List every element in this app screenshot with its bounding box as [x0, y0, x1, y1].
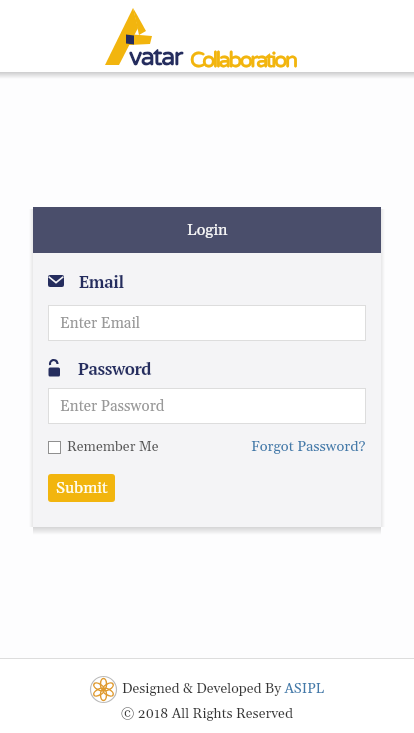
staticText: Email: [79, 270, 124, 292]
staticText: Enter Password: [60, 397, 165, 416]
staticText: Submit: [56, 478, 108, 498]
button[interactable]: Designed & Developed By ASIPL: [122, 680, 325, 698]
button[interactable]: Submit: [48, 474, 115, 502]
staticText: Collaboration: [190, 47, 296, 73]
staticText: Login: [187, 220, 228, 240]
staticText: Password: [78, 357, 152, 379]
staticText: © 2018 All Rights Reserved: [0, 705, 414, 723]
staticText: Enter Email: [60, 314, 141, 333]
button[interactable]: Remember Me: [48, 438, 159, 456]
button[interactable]: Forgot Password?: [251, 438, 366, 456]
button[interactable]: Enter Email: [48, 305, 366, 341]
staticText: vatar: [129, 42, 183, 72]
staticText: Remember Me: [67, 438, 159, 456]
button[interactable]: Enter Password: [48, 388, 366, 424]
